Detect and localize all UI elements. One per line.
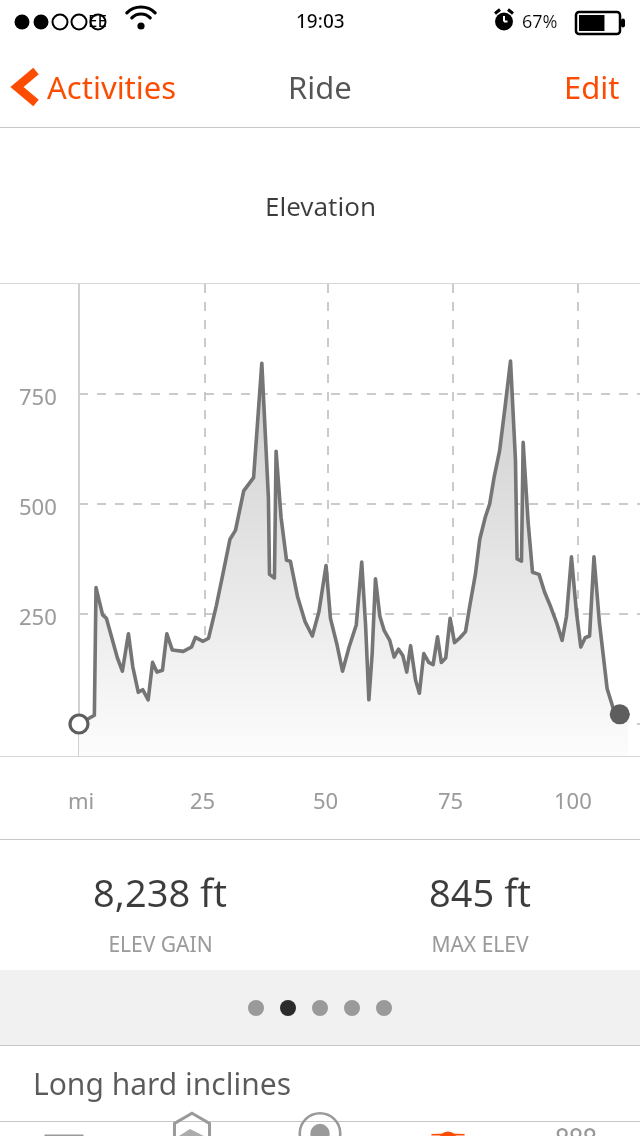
staticText: Long hard inclines [33,1063,292,1104]
staticText: 750 [19,381,57,411]
button[interactable]: Long hard inclines [0,1046,640,1121]
staticText: ELEV GAIN [108,930,213,959]
button[interactable]: Page 3 [312,1000,328,1016]
button[interactable]: 8,238 ft [0,840,320,970]
staticText: 500 [19,491,57,521]
staticText: 75 [438,785,464,815]
staticText: Elevation [265,188,376,223]
button[interactable]: Page 1 [248,1000,264,1016]
staticText: MAX ELEV [431,930,529,959]
button[interactable]: Page 5 [376,1000,392,1016]
staticText: 845 ft [429,866,531,918]
button[interactable]: Back to Activities [0,46,193,128]
staticText: 25 [190,785,216,815]
button[interactable]: Feed [0,1122,128,1136]
staticText: Activities [47,66,177,108]
staticText: 8,238 ft [93,866,227,918]
staticText: 50 [313,785,339,815]
staticText: EE [88,9,107,32]
button[interactable]: Profile [384,1122,512,1136]
button[interactable]: Edit [544,46,640,128]
staticText: Edit [564,66,620,108]
staticText: 67% [522,9,558,34]
button[interactable]: Page 2 [280,1000,296,1016]
button[interactable]: More [512,1122,640,1136]
staticText: Ride [288,66,352,108]
staticText: 19:03 [296,8,345,34]
button[interactable]: 845 ft [320,840,640,970]
staticText: mi [68,785,95,815]
button[interactable]: Challenges [128,1122,256,1136]
staticText: 250 [19,601,57,631]
staticText: 100 [554,785,592,815]
button[interactable]: Page 4 [344,1000,360,1016]
button[interactable]: Record [256,1122,384,1136]
